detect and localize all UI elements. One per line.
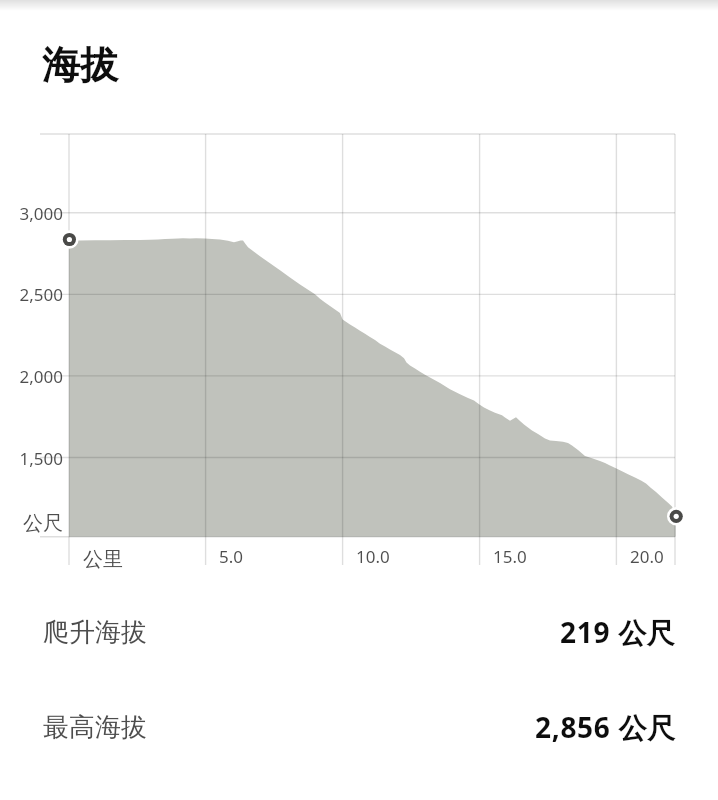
staticText: 219 公尺 [560, 613, 676, 651]
staticText: 10.0 [356, 545, 390, 568]
staticText: 公里 [83, 547, 123, 572]
staticText: 公尺 [23, 511, 63, 536]
staticText: 3,000 [19, 202, 63, 225]
staticText: 2,500 [19, 283, 63, 306]
staticText: 2,856 公尺 [535, 708, 676, 746]
staticText: 海拔 [42, 41, 118, 89]
staticText: 2,000 [19, 365, 63, 388]
other: Elevation profile chart [0, 0, 718, 800]
button[interactable]: 爬升海拔 [0, 590, 718, 674]
button[interactable]: 最高海拔 [0, 685, 718, 769]
staticText: 20.0 [630, 545, 664, 568]
staticText: 5.0 [219, 545, 244, 568]
staticText: 15.0 [493, 545, 527, 568]
staticText: 爬升海拔 [43, 616, 147, 649]
staticText: 1,500 [19, 447, 63, 470]
staticText: 最高海拔 [43, 711, 147, 744]
